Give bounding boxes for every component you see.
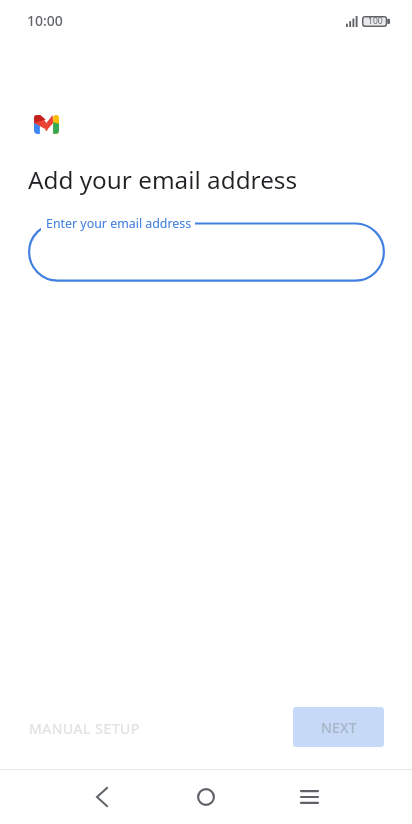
button[interactable]: Recent apps [281, 769, 337, 824]
other: Gmail [34, 115, 59, 134]
button[interactable]: MANUAL SETUP [17, 708, 152, 749]
staticText: NEXT [321, 718, 357, 737]
button[interactable]: Home [178, 769, 234, 824]
other: Battery 100 percent [362, 15, 390, 27]
button[interactable]: Enter your email address [28, 212, 385, 282]
staticText: 100 [368, 15, 383, 27]
staticText: MANUAL SETUP [29, 719, 140, 738]
staticText: 10:00 [27, 11, 63, 30]
other: Mobile signal strength [346, 16, 358, 27]
staticText: Enter your email address [46, 215, 192, 232]
staticText: Add your email address [28, 163, 298, 196]
button[interactable]: NEXT [293, 707, 384, 747]
button[interactable]: Back [74, 769, 130, 824]
